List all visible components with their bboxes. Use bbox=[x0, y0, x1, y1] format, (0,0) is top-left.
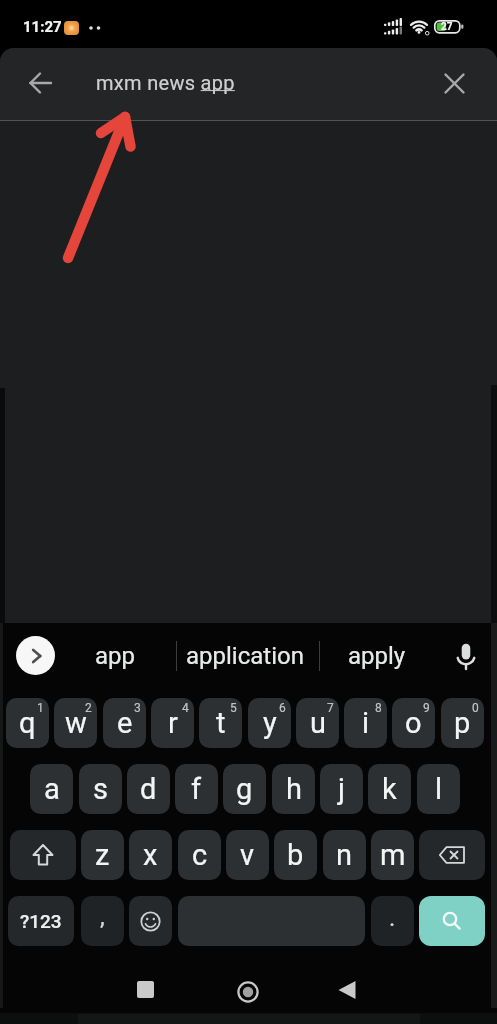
staticText: 2 bbox=[85, 701, 92, 715]
button[interactable] bbox=[16, 636, 55, 675]
button[interactable] bbox=[437, 66, 472, 101]
staticText: app bbox=[95, 642, 136, 670]
button[interactable]: i bbox=[344, 698, 387, 748]
button[interactable]: application bbox=[180, 640, 310, 672]
button[interactable]: . bbox=[371, 896, 414, 946]
staticText: g bbox=[236, 772, 253, 806]
staticText: ?123 bbox=[20, 910, 62, 932]
button[interactable]: f bbox=[175, 764, 218, 814]
button[interactable] bbox=[332, 975, 362, 1005]
staticText: apply bbox=[348, 642, 406, 670]
staticText: q bbox=[19, 706, 36, 740]
staticText: t bbox=[216, 706, 226, 740]
button[interactable] bbox=[232, 976, 263, 1007]
staticText: 8 bbox=[375, 701, 382, 715]
staticText: b bbox=[287, 838, 304, 872]
staticText: 7 bbox=[327, 701, 334, 715]
button[interactable] bbox=[24, 66, 58, 100]
button[interactable]: app bbox=[50, 640, 180, 672]
staticText: w bbox=[65, 706, 87, 740]
staticText: m bbox=[380, 838, 406, 872]
button[interactable]: r bbox=[151, 698, 194, 748]
button[interactable]: v bbox=[226, 830, 269, 880]
button[interactable]: ?123 bbox=[8, 896, 74, 946]
staticText: 3 bbox=[134, 701, 141, 715]
button[interactable]: n bbox=[323, 830, 366, 880]
button[interactable]: m bbox=[371, 830, 414, 880]
staticText: 6 bbox=[279, 701, 286, 715]
button[interactable]: z bbox=[81, 830, 124, 880]
staticText: 9 bbox=[423, 701, 430, 715]
button[interactable]: h bbox=[272, 764, 315, 814]
button[interactable] bbox=[10, 830, 76, 880]
button[interactable]: y bbox=[248, 698, 291, 748]
button[interactable] bbox=[130, 974, 160, 1004]
staticText: s bbox=[93, 772, 108, 806]
button[interactable] bbox=[129, 896, 172, 946]
staticText: x bbox=[143, 838, 158, 872]
button[interactable]: s bbox=[79, 764, 122, 814]
staticText: 1 bbox=[37, 701, 44, 715]
button[interactable]: x bbox=[129, 830, 172, 880]
button[interactable]: o bbox=[392, 698, 435, 748]
staticText: 11:27 bbox=[23, 18, 62, 36]
staticText: 5 bbox=[230, 701, 237, 715]
staticText: i bbox=[362, 706, 370, 740]
staticText: 0 bbox=[472, 701, 479, 715]
staticText: , bbox=[100, 903, 105, 931]
staticText: d bbox=[140, 772, 157, 806]
staticText: v bbox=[240, 838, 255, 872]
button[interactable]: l bbox=[417, 764, 460, 814]
button[interactable]: j bbox=[320, 764, 363, 814]
button[interactable]: p bbox=[441, 698, 484, 748]
staticText: e bbox=[117, 706, 133, 740]
button[interactable] bbox=[449, 639, 482, 673]
staticText: 27 bbox=[441, 21, 453, 33]
button[interactable]: u bbox=[296, 698, 339, 748]
button[interactable]: c bbox=[178, 830, 221, 880]
staticText: k bbox=[382, 772, 397, 806]
button[interactable]: e bbox=[103, 698, 146, 748]
button[interactable]: k bbox=[368, 764, 411, 814]
staticText: u bbox=[310, 706, 326, 740]
button[interactable]: apply bbox=[312, 640, 442, 672]
staticText: o bbox=[405, 706, 422, 740]
button[interactable]: , bbox=[81, 896, 124, 946]
staticText: h bbox=[286, 772, 302, 806]
staticText: y bbox=[263, 706, 277, 740]
button[interactable]: t bbox=[199, 698, 242, 748]
button[interactable]: g bbox=[223, 764, 266, 814]
button[interactable]: b bbox=[274, 830, 317, 880]
staticText: mxm news app bbox=[96, 71, 235, 94]
staticText: . bbox=[389, 904, 396, 932]
button[interactable]: a bbox=[30, 764, 73, 814]
staticText: j bbox=[338, 772, 345, 806]
staticText: a bbox=[44, 772, 60, 806]
staticText: application bbox=[186, 642, 304, 670]
staticText: 4 bbox=[182, 701, 189, 715]
staticText: p bbox=[454, 706, 471, 740]
staticText: z bbox=[95, 838, 110, 872]
staticText: r bbox=[168, 706, 178, 740]
button[interactable]: w bbox=[54, 698, 97, 748]
staticText: c bbox=[192, 838, 208, 872]
button[interactable]: q bbox=[6, 698, 49, 748]
button[interactable] bbox=[419, 896, 485, 946]
staticText: n bbox=[336, 838, 353, 872]
staticText: f bbox=[191, 772, 202, 806]
staticText: l bbox=[435, 772, 443, 806]
button[interactable] bbox=[178, 896, 365, 946]
button[interactable]: d bbox=[127, 764, 170, 814]
button[interactable] bbox=[419, 830, 485, 880]
